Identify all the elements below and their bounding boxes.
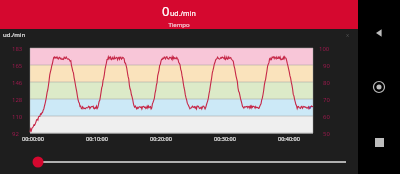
staticText: 92	[12, 130, 19, 138]
staticText: 110	[12, 113, 23, 121]
staticText: 100	[319, 45, 330, 53]
staticText: ud./min	[3, 31, 26, 39]
staticText: 146	[12, 79, 23, 87]
staticText: 60	[323, 113, 330, 121]
staticText: 80	[323, 79, 330, 87]
staticText: 00:20:00	[150, 135, 172, 142]
staticText: 183	[12, 45, 23, 53]
button[interactable]: Recent apps	[358, 120, 400, 164]
staticText: 00:10:00	[86, 135, 108, 142]
staticText: 70	[323, 96, 330, 104]
button[interactable]: Home	[358, 65, 400, 109]
button[interactable]: Back	[358, 11, 400, 55]
staticText: ud./min	[170, 9, 196, 19]
button[interactable]: ud./min	[0, 29, 358, 150]
button[interactable]: 0	[0, 0, 358, 29]
staticText: 00:30:00	[214, 135, 236, 142]
staticText: 00:40:00	[278, 135, 300, 142]
staticText: x	[346, 31, 350, 39]
staticText: 50	[323, 130, 330, 138]
staticText: 128	[12, 96, 23, 104]
button[interactable]: Time position slider	[0, 150, 358, 174]
staticText: Tiempo	[168, 21, 190, 29]
staticText: 90	[323, 62, 330, 70]
staticText: 165	[12, 62, 23, 70]
staticText: 0	[162, 2, 170, 20]
staticText: 00:00:00	[22, 135, 44, 142]
